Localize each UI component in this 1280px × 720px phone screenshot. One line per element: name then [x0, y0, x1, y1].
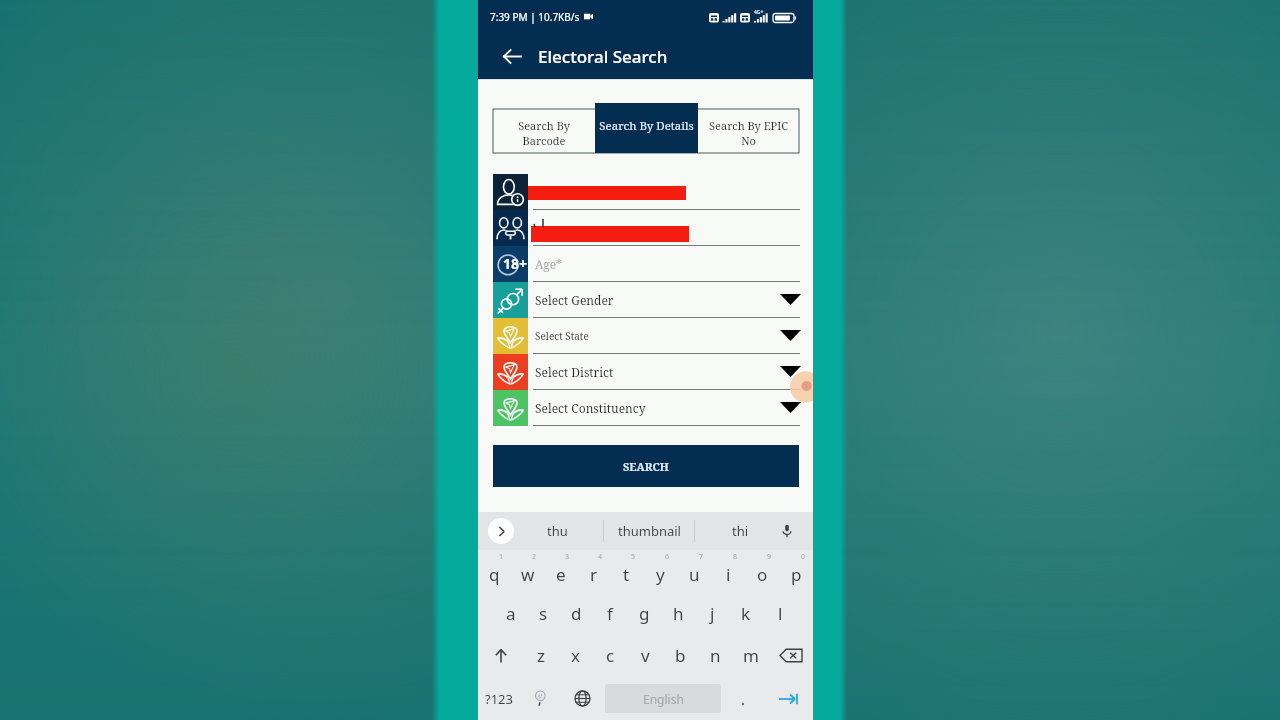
button[interactable]: English: [605, 684, 721, 713]
staticText: 1: [499, 552, 504, 562]
staticText: n: [710, 644, 721, 667]
button[interactable]: Select Gender: [528, 282, 800, 318]
staticText: h: [673, 602, 684, 625]
staticText: o: [757, 563, 768, 586]
staticText: 6: [665, 552, 670, 562]
button[interactable]: h: [661, 592, 695, 634]
button[interactable]: a: [494, 592, 527, 634]
button[interactable]: [528, 174, 800, 210]
staticText: 9: [767, 552, 772, 562]
staticText: s: [539, 602, 548, 625]
button[interactable]: Shift: [478, 634, 523, 677]
button[interactable]: z: [523, 634, 558, 677]
button[interactable]: Select State: [528, 318, 800, 354]
button[interactable]: y: [643, 550, 677, 592]
button[interactable]: e: [544, 550, 577, 592]
button[interactable]: t: [610, 550, 643, 592]
staticText: 3: [565, 552, 570, 562]
button[interactable]: Change language: [560, 677, 605, 720]
staticText: thu: [547, 522, 568, 540]
button[interactable]: thi: [695, 512, 785, 550]
staticText: p: [791, 563, 802, 586]
button[interactable]: n: [698, 634, 733, 677]
button[interactable]: k: [729, 592, 763, 634]
button[interactable]: m: [733, 634, 768, 677]
staticText: 5: [631, 552, 636, 562]
staticText: e: [556, 563, 566, 586]
staticText: m: [743, 644, 759, 667]
staticText: Select Constituency: [535, 400, 646, 416]
button[interactable]: v: [628, 634, 663, 677]
button[interactable]: SEARCH: [493, 445, 799, 487]
button[interactable]: thumbnail: [604, 512, 694, 550]
button[interactable]: x: [558, 634, 593, 677]
staticText: a: [506, 602, 516, 625]
staticText: l: [778, 602, 783, 625]
staticText: z: [537, 644, 545, 667]
staticText: y: [656, 563, 665, 586]
button[interactable]: f: [593, 592, 627, 634]
button[interactable]: [528, 210, 800, 246]
button[interactable]: Next: [765, 677, 813, 720]
button[interactable]: r: [577, 550, 610, 592]
staticText: 4G+: [754, 9, 764, 16]
staticText: x: [571, 644, 580, 667]
button[interactable]: l: [763, 592, 797, 634]
button[interactable]: q: [478, 550, 511, 592]
staticText: v: [641, 644, 650, 667]
staticText: q: [489, 563, 500, 586]
staticText: Electoral Search: [538, 45, 668, 68]
button[interactable]: Back: [494, 38, 530, 74]
button[interactable]: o: [745, 550, 779, 592]
staticText: Select District: [535, 364, 614, 380]
staticText: ?123: [485, 690, 513, 708]
staticText: b: [675, 644, 686, 667]
staticText: 2: [532, 552, 537, 562]
button[interactable]: Backspace: [768, 634, 813, 677]
staticText: .: [741, 689, 746, 709]
button[interactable]: g: [627, 592, 661, 634]
button[interactable]: Voice input: [775, 519, 799, 543]
button[interactable]: thu: [512, 512, 603, 550]
button[interactable]: Search By EPIC No: [697, 109, 799, 153]
staticText: 7: [699, 552, 704, 562]
staticText: w: [521, 563, 535, 586]
staticText: 18+: [503, 254, 528, 273]
staticText: r: [590, 563, 598, 586]
button[interactable]: Emoji: [520, 677, 560, 720]
button[interactable]: .: [721, 677, 765, 720]
staticText: SEARCH: [623, 459, 669, 474]
staticText: thumbnail: [618, 522, 681, 540]
button[interactable]: Select District: [528, 354, 800, 390]
staticText: thi: [732, 522, 749, 540]
button[interactable]: Age*: [528, 246, 800, 282]
button[interactable]: d: [560, 592, 593, 634]
staticText: English: [643, 691, 684, 707]
staticText: Search By EPIC No: [709, 118, 788, 148]
button[interactable]: c: [593, 634, 628, 677]
button[interactable]: More suggestions: [488, 518, 514, 544]
button[interactable]: u: [677, 550, 711, 592]
staticText: 8: [733, 552, 738, 562]
button[interactable]: s: [527, 592, 560, 634]
button[interactable]: w: [511, 550, 544, 592]
button[interactable]: b: [663, 634, 698, 677]
staticText: j: [710, 602, 715, 625]
button[interactable]: Search By Details: [595, 103, 698, 153]
staticText: c: [606, 644, 615, 667]
staticText: g: [639, 602, 650, 625]
button[interactable]: p: [779, 550, 813, 592]
staticText: Search By Barcode: [518, 118, 570, 148]
staticText: 0: [801, 552, 806, 562]
staticText: d: [571, 602, 582, 625]
button[interactable]: ?123: [478, 677, 520, 720]
button[interactable]: i: [711, 550, 745, 592]
staticText: 7:39 PM | 10.7KB/s: [490, 10, 580, 24]
staticText: Search By Details: [599, 118, 694, 134]
button[interactable]: Search By Barcode: [493, 109, 595, 153]
staticText: u: [689, 563, 700, 586]
button[interactable]: j: [695, 592, 729, 634]
staticText: i: [726, 563, 731, 586]
staticText: f: [607, 602, 613, 625]
button[interactable]: Select Constituency: [528, 390, 800, 426]
